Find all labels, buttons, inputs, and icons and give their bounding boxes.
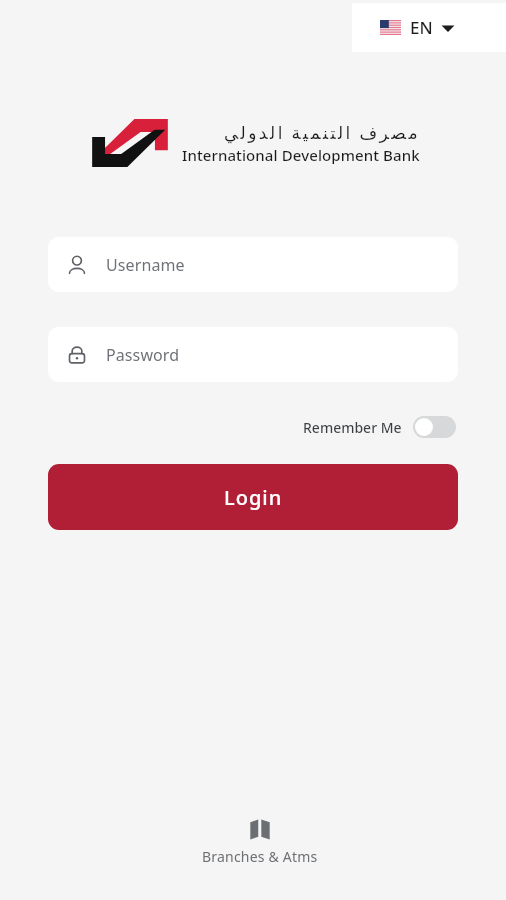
other: International Development Bank logo	[86, 113, 174, 173]
button[interactable]: Login	[48, 464, 458, 530]
staticText: Password	[106, 344, 180, 366]
other: Username	[66, 254, 88, 276]
other: Password	[66, 344, 88, 366]
button[interactable]: Branches and ATMs	[192, 815, 328, 870]
other: Branches and ATMs	[249, 819, 271, 840]
staticText: EN	[410, 16, 433, 39]
button[interactable]: Password	[48, 327, 458, 382]
staticText: مصرف التنمية الدولي	[224, 121, 420, 144]
button[interactable]: Select language, English	[352, 3, 506, 52]
button[interactable]: Remember Me	[301, 412, 458, 442]
staticText: International Development Bank	[182, 145, 420, 165]
staticText: Username	[106, 254, 185, 276]
staticText: Branches & Atms	[202, 847, 318, 866]
button[interactable]: Username	[48, 237, 458, 292]
staticText: Login	[224, 484, 283, 511]
staticText: Remember Me	[303, 418, 402, 437]
